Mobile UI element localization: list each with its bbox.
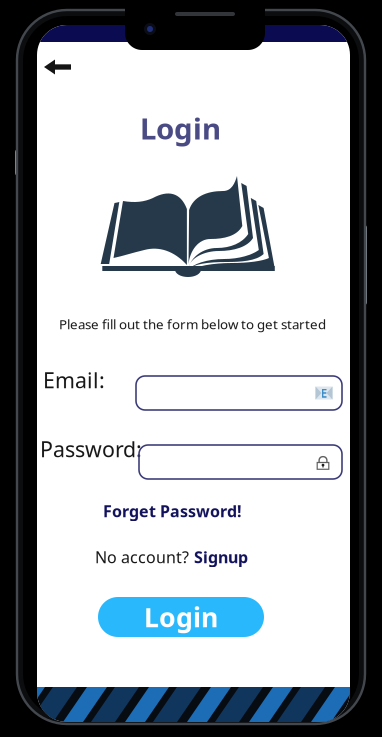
staticText: Login [144,599,218,635]
staticText: Signup [194,546,248,568]
staticText: Password: [40,435,142,463]
staticText: Forget Password! [103,500,242,522]
button[interactable]: Login [98,597,264,637]
staticText: No account? [95,546,189,568]
button[interactable]: Back [44,50,92,84]
staticText: Email: [43,366,105,394]
button[interactable]: Signup [194,546,248,568]
staticText: Please fill out the form below to get st… [59,315,326,333]
staticText: E [320,385,327,401]
button[interactable]: Forget Password! [16,501,329,521]
staticText: Login [140,108,221,147]
